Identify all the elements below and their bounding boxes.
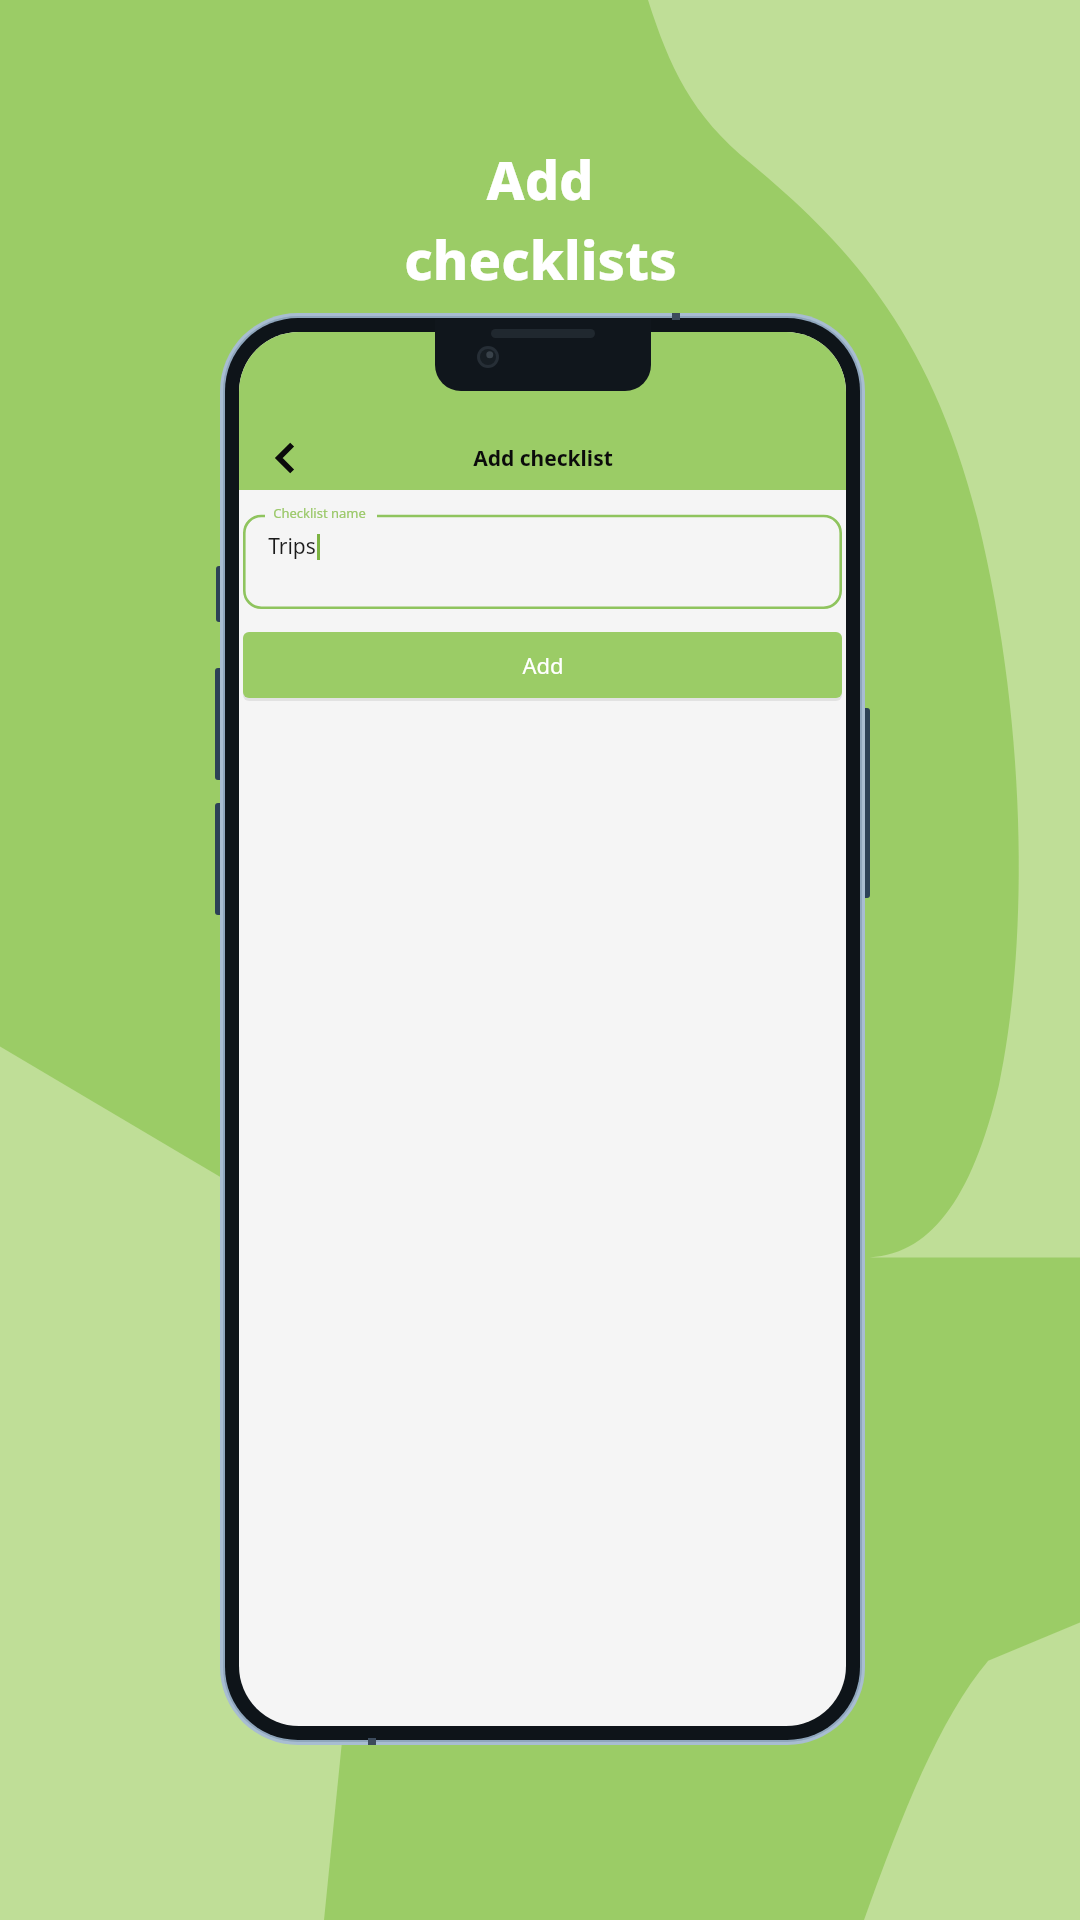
staticText: Add — [486, 142, 594, 216]
staticText: checklists — [404, 222, 677, 296]
staticText: Trips — [268, 532, 316, 561]
staticText: Add — [522, 650, 564, 680]
button[interactable]: Add — [243, 632, 842, 698]
button[interactable]: Back — [253, 426, 317, 490]
button[interactable]: Checklist name — [243, 505, 842, 609]
staticText: Add checklist — [473, 444, 613, 473]
staticText: Checklist name — [273, 504, 366, 522]
